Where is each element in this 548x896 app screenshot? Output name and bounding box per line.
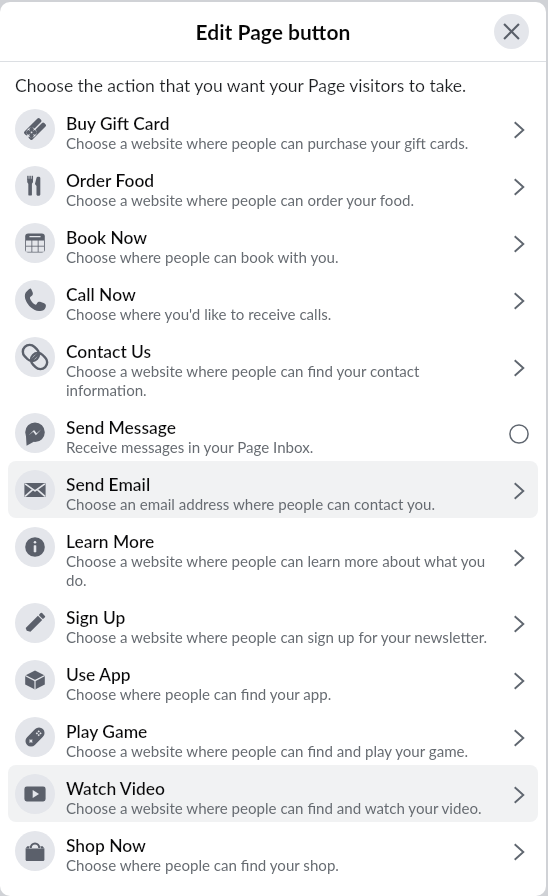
staticText: Choose a website where people can find a…	[66, 742, 469, 760]
staticText: Send Message	[66, 417, 176, 438]
button[interactable]: Order Food	[8, 157, 538, 214]
staticText: Edit Page button	[0, 19, 546, 44]
staticText: Choose where you'd like to receive calls…	[66, 305, 332, 323]
button[interactable]: Watch Video	[8, 765, 538, 822]
staticText: Play Game	[66, 721, 148, 742]
button[interactable]: Play Game	[8, 708, 538, 765]
button[interactable]: Book Now	[8, 214, 538, 271]
button[interactable]: Buy Gift Card	[8, 100, 538, 157]
staticText: Contact Us	[66, 341, 152, 362]
staticText: Choose a website where people can learn …	[66, 552, 503, 589]
staticText: Book Now	[66, 227, 148, 248]
staticText: Learn More	[66, 531, 155, 552]
staticText: Call Now	[66, 284, 136, 305]
button[interactable]: Contact Us	[8, 328, 538, 404]
staticText: Sign Up	[66, 607, 126, 628]
button[interactable]: Learn More	[8, 518, 538, 594]
staticText: Choose where people can find your shop.	[66, 856, 339, 874]
button[interactable]: Close	[494, 14, 529, 49]
button[interactable]: Shop Now	[8, 822, 538, 879]
staticText: Choose a website where people can find a…	[66, 799, 482, 817]
staticText: Choose a website where people can order …	[66, 191, 414, 209]
staticText: Choose the action that you want your Pag…	[15, 75, 467, 96]
staticText: Send Email	[66, 474, 151, 495]
button[interactable]: Call Now	[8, 271, 538, 328]
staticText: Watch Video	[66, 778, 166, 799]
button[interactable]: Use App	[8, 651, 538, 708]
staticText: Choose a website where people can sign u…	[66, 628, 488, 646]
staticText: Choose where people can find your app.	[66, 685, 332, 703]
button[interactable]: Send Email	[8, 461, 538, 518]
button[interactable]: Send Message	[8, 404, 538, 461]
staticText: Choose an email address where people can…	[66, 495, 436, 513]
staticText: Choose where people can book with you.	[66, 248, 339, 266]
staticText: Buy Gift Card	[66, 113, 170, 134]
staticText: Receive messages in your Page Inbox.	[66, 438, 314, 456]
staticText: Order Food	[66, 170, 155, 191]
staticText: Choose a website where people can purcha…	[66, 134, 469, 152]
button[interactable]: Sign Up	[8, 594, 538, 651]
staticText: Shop Now	[66, 835, 146, 856]
staticText: Choose a website where people can find y…	[66, 362, 503, 399]
staticText: Use App	[66, 664, 131, 685]
